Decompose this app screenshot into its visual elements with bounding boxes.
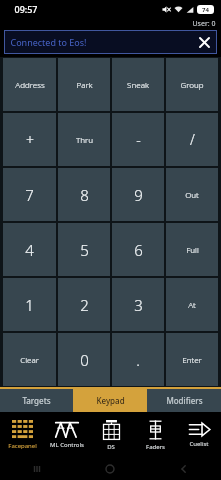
- button[interactable]: 7: [3, 168, 56, 221]
- button[interactable]: 9: [112, 168, 164, 221]
- button[interactable]: 3: [112, 278, 164, 331]
- staticText: 09:57: [14, 3, 38, 15]
- staticText: Connected to Eos!: [10, 36, 87, 48]
- button[interactable]: Park: [58, 58, 110, 111]
- staticText: 5: [80, 240, 89, 260]
- button[interactable]: 2: [58, 278, 110, 331]
- button[interactable]: .: [112, 333, 164, 386]
- staticText: Park: [76, 79, 93, 90]
- button[interactable]: 0: [58, 333, 110, 386]
- button[interactable]: Dismiss notification: [195, 33, 213, 51]
- staticText: Clear: [20, 354, 39, 365]
- staticText: Full: [186, 244, 199, 255]
- button[interactable]: Faders: [133, 412, 177, 458]
- button[interactable]: Keypad: [73, 389, 147, 412]
- staticText: User: 0: [192, 19, 216, 29]
- staticText: +: [26, 130, 34, 149]
- staticText: At: [188, 299, 196, 310]
- staticText: 1: [25, 295, 34, 315]
- staticText: Cuelist: [189, 440, 209, 448]
- button[interactable]: 4: [3, 223, 56, 276]
- button[interactable]: Connected to Eos!: [4, 30, 217, 54]
- button[interactable]: -: [112, 113, 164, 166]
- staticText: Facepanel: [8, 442, 37, 450]
- button[interactable]: Targets: [0, 389, 73, 412]
- button[interactable]: DS: [89, 412, 133, 458]
- staticText: -: [136, 130, 141, 149]
- button[interactable]: Cuelist: [177, 412, 221, 458]
- button[interactable]: 8: [58, 168, 110, 221]
- staticText: 7: [25, 185, 34, 205]
- button[interactable]: At: [166, 278, 218, 331]
- button[interactable]: Sneak: [112, 58, 164, 111]
- button[interactable]: Thru: [58, 113, 110, 166]
- button[interactable]: Address: [3, 58, 56, 111]
- staticText: .: [136, 350, 140, 370]
- button[interactable]: 1: [3, 278, 56, 331]
- staticText: Sneak: [127, 79, 149, 90]
- button[interactable]: Out: [166, 168, 218, 221]
- staticText: Address: [15, 79, 45, 90]
- staticText: Enter: [182, 354, 202, 365]
- staticText: 4: [25, 240, 34, 260]
- button[interactable]: Group: [166, 58, 218, 111]
- staticText: 74: [202, 6, 209, 14]
- staticText: 0: [80, 350, 89, 370]
- staticText: Faders: [146, 443, 165, 451]
- button[interactable]: Facepanel: [0, 412, 45, 458]
- button[interactable]: Home: [73, 458, 147, 480]
- button[interactable]: 5: [58, 223, 110, 276]
- staticText: 9: [134, 185, 143, 205]
- staticText: Targets: [22, 395, 51, 406]
- button[interactable]: Full: [166, 223, 218, 276]
- button[interactable]: Clear: [3, 333, 56, 386]
- staticText: 6: [134, 240, 143, 260]
- staticText: 8: [80, 185, 89, 205]
- staticText: /: [190, 130, 195, 149]
- staticText: 2: [80, 295, 89, 315]
- button[interactable]: Modifiers: [147, 389, 221, 412]
- staticText: ML Controls: [50, 441, 84, 449]
- staticText: DS: [107, 443, 115, 451]
- button[interactable]: 6: [112, 223, 164, 276]
- button[interactable]: +: [3, 113, 56, 166]
- button[interactable]: Recent apps: [0, 458, 73, 480]
- button[interactable]: /: [166, 113, 218, 166]
- staticText: Thru: [76, 134, 93, 145]
- staticText: Group: [180, 79, 204, 90]
- staticText: Out: [185, 189, 199, 200]
- staticText: 3: [134, 295, 143, 315]
- button[interactable]: ML Controls: [45, 412, 89, 458]
- staticText: Keypad: [96, 395, 125, 406]
- button[interactable]: Back: [147, 458, 221, 480]
- button[interactable]: Enter: [166, 333, 218, 386]
- staticText: Modifiers: [166, 395, 203, 406]
